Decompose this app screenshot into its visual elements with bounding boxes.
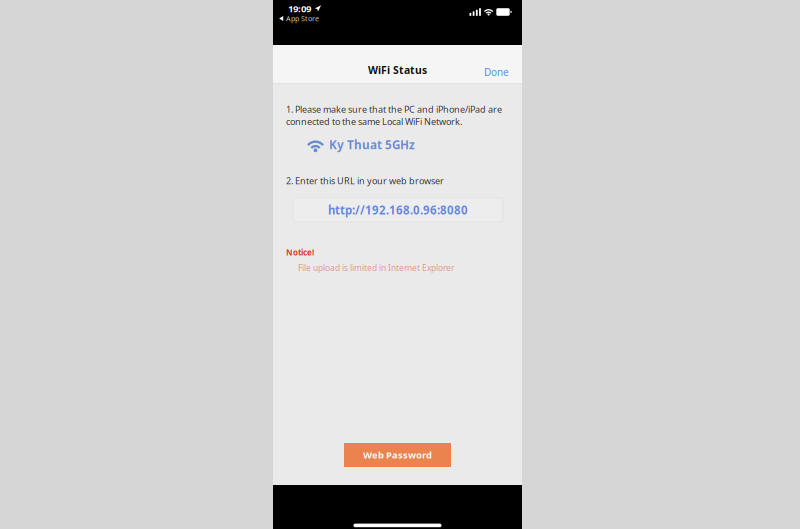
staticText: Ky Thuat 5GHz: [329, 137, 415, 153]
button[interactable]: App Store: [279, 15, 319, 22]
staticText: 1. Please make sure that the PC and iPho…: [286, 103, 502, 115]
staticText: WiFi Status: [368, 63, 427, 77]
staticText: connected to the same Local WiFi Network…: [286, 115, 462, 128]
staticText: 2. Enter this URL in your web browser: [286, 175, 444, 187]
staticText: http://192.168.0.96:8080: [328, 202, 468, 218]
staticText: Done: [484, 65, 509, 79]
button[interactable]: Done: [468, 45, 522, 84]
button[interactable]: http://192.168.0.96:8080: [293, 198, 503, 222]
staticText: App Store: [286, 14, 319, 23]
button[interactable]: Web Password: [344, 443, 451, 467]
staticText: 19:09: [288, 2, 311, 15]
staticText: Notice!: [286, 247, 314, 258]
staticText: File upload is limited in Internet Explo…: [298, 262, 454, 273]
staticText: Web Password: [363, 449, 432, 461]
